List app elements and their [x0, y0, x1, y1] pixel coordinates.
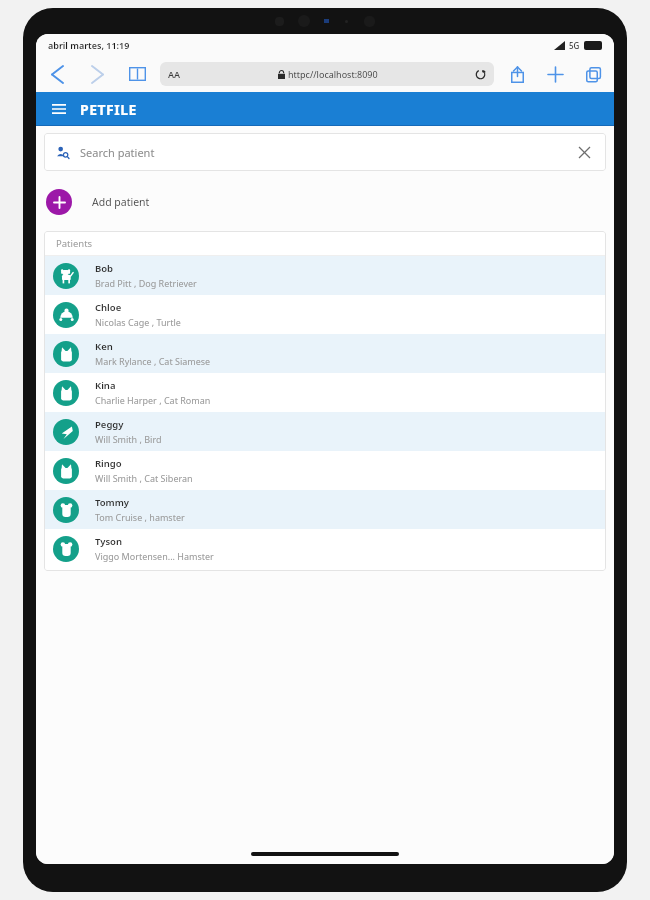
staticText: Bob [95, 262, 114, 275]
staticText: Ringo [95, 457, 122, 470]
button[interactable]: Ken [44, 334, 606, 373]
button[interactable]: AA [160, 62, 494, 86]
staticText: Will Smith , Cat Siberan [95, 472, 193, 484]
button[interactable]: Tabs [582, 63, 604, 85]
staticText: Peggy [95, 418, 124, 431]
button[interactable]: Menu [48, 98, 70, 120]
button[interactable]: Tyson [44, 529, 606, 568]
staticText: Charlie Harper , Cat Roman [95, 394, 211, 406]
staticText: Tyson [95, 535, 123, 548]
staticText: Nicolas Cage , Turtle [95, 316, 181, 328]
button[interactable]: Peggy [44, 412, 606, 451]
staticText: Chloe [95, 301, 122, 314]
button[interactable]: Forward [86, 63, 108, 85]
button[interactable]: Chloe [44, 295, 606, 334]
button[interactable]: Bookmarks [126, 63, 148, 85]
button[interactable]: Search patient [80, 145, 574, 160]
staticText: PETFILE [80, 100, 137, 119]
staticText: Search patient [80, 145, 155, 160]
button[interactable]: Tommy [44, 490, 606, 529]
staticText: Patients [56, 237, 93, 250]
staticText: Mark Rylance , Cat Siamese [95, 355, 211, 367]
staticText: Add patient [92, 195, 150, 209]
staticText: Viggo Mortensen... Hamster [95, 550, 214, 562]
staticText: httpc//localhost:8090 [288, 68, 378, 80]
staticText: abril martes, 11:19 [48, 39, 130, 51]
staticText: Brad Pitt , Dog Retriever [95, 277, 197, 289]
staticText: Kina [95, 379, 116, 392]
button[interactable]: Clear search [574, 142, 594, 162]
button[interactable]: Bob [44, 256, 606, 295]
staticText: Ken [95, 340, 113, 353]
button[interactable]: New Tab [544, 63, 566, 85]
staticText: Will Smith , Bird [95, 433, 162, 445]
button[interactable]: Share [506, 63, 528, 85]
staticText: Tommy [95, 496, 130, 509]
staticText: 5G [569, 40, 580, 51]
button[interactable]: Kina [44, 373, 606, 412]
button[interactable]: Back [46, 63, 68, 85]
button[interactable]: Ringo [44, 451, 606, 490]
button[interactable]: Add patient [44, 185, 152, 219]
staticText: Tom Cruise , hamster [95, 511, 185, 523]
staticText: AA [168, 68, 181, 80]
